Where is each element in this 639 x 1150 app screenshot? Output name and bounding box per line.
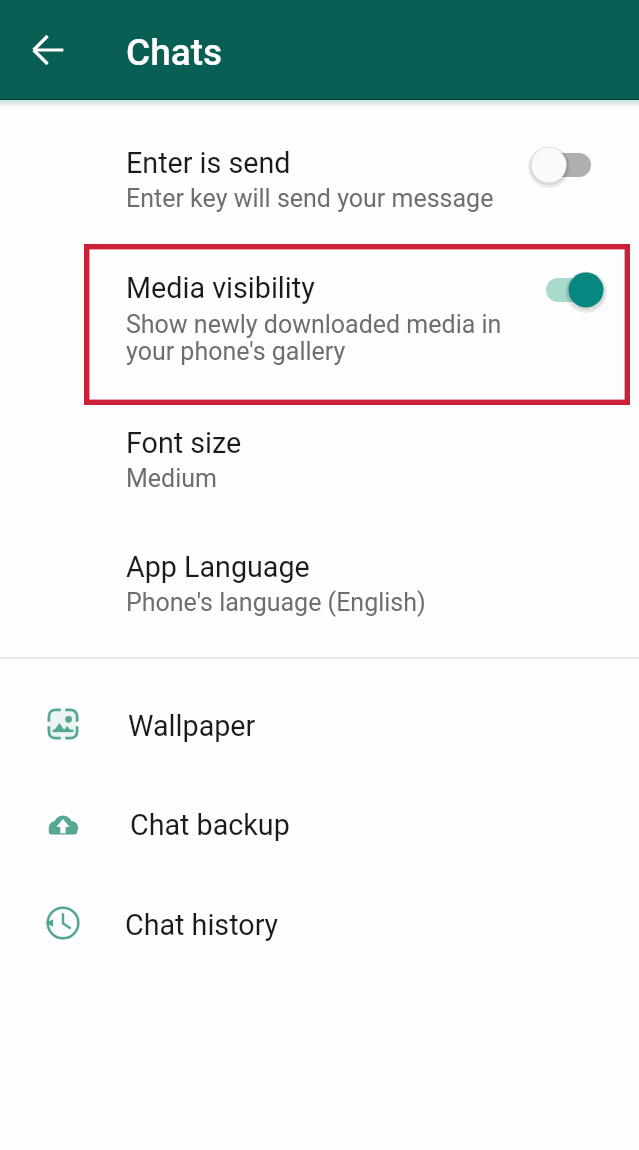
staticText: Show newly downloaded media in — [126, 310, 502, 339]
staticText: Chat backup — [130, 808, 290, 842]
staticText: Enter is send — [126, 146, 291, 180]
staticText: Wallpaper — [128, 709, 256, 743]
button[interactable]: Media visibility, on — [529, 260, 603, 320]
button[interactable]: Wallpaper — [0, 691, 639, 757]
button[interactable]: Enter is send, off — [529, 135, 603, 195]
button[interactable]: Enter is send — [0, 124, 639, 220]
staticText: App Language — [126, 550, 310, 584]
button[interactable]: Back — [20, 22, 76, 78]
staticText: Font size — [126, 426, 242, 460]
staticText: Medium — [126, 464, 217, 493]
staticText: Chat history — [125, 908, 279, 942]
button[interactable]: Media visibility — [0, 250, 639, 380]
button[interactable]: Chat backup — [0, 791, 639, 857]
button[interactable]: Font size — [0, 406, 639, 500]
button[interactable]: Chat history — [0, 891, 639, 957]
staticText: Media visibility — [126, 271, 315, 305]
staticText: Chats — [126, 31, 223, 74]
staticText: Enter key will send your message — [126, 184, 494, 213]
staticText: Phone's language (English) — [126, 588, 426, 617]
button[interactable]: App Language — [0, 530, 639, 626]
staticText: your phone's gallery — [126, 337, 346, 366]
